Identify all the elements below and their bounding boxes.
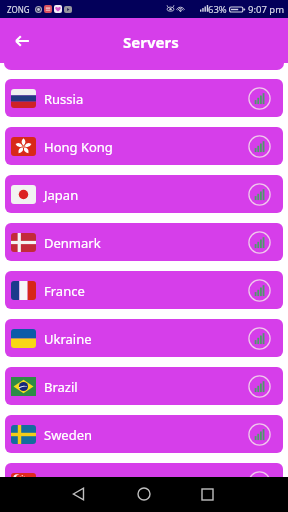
staticText: Russia [44, 90, 84, 108]
button[interactable]: Denmark [5, 223, 283, 261]
button[interactable]: Russia [5, 79, 283, 117]
button[interactable]: Back [64, 479, 94, 509]
button[interactable]: Back [7, 26, 37, 56]
staticText: France [44, 282, 85, 300]
button[interactable]: Singapore [5, 463, 283, 501]
button[interactable]: Recent apps [192, 479, 222, 509]
staticText: Ukraine [44, 330, 92, 348]
staticText: ZONG [7, 4, 30, 15]
staticText: Denmark [44, 234, 101, 252]
button[interactable]: Brazil [5, 367, 283, 405]
button[interactable]: Sweden [5, 415, 283, 453]
staticText: Singapore [44, 474, 107, 492]
button[interactable]: Japan [5, 175, 283, 213]
staticText: Japan [44, 186, 79, 204]
button[interactable]: Home [129, 479, 159, 509]
button[interactable]: Hong Kong [5, 127, 283, 165]
staticText: Servers [123, 32, 179, 52]
staticText: Sweden [44, 426, 93, 444]
button[interactable]: Ukraine [5, 319, 283, 357]
staticText: Hong Kong [44, 138, 113, 156]
button[interactable]: France [5, 271, 283, 309]
staticText: 63% [208, 3, 227, 16]
staticText: Brazil [44, 378, 78, 396]
staticText: 9:07 pm [248, 3, 285, 16]
